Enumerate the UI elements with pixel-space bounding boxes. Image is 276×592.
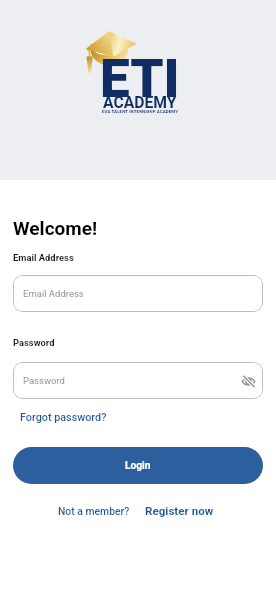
staticText: Email Address bbox=[23, 288, 84, 299]
button[interactable]: Register now bbox=[145, 504, 214, 518]
button[interactable]: Show password bbox=[237, 370, 259, 392]
staticText: ACADEMY bbox=[103, 93, 177, 111]
button[interactable]: Forgot password? bbox=[20, 411, 107, 424]
staticText: Register now bbox=[145, 504, 214, 518]
staticText: ETI bbox=[100, 48, 180, 110]
staticText: EVA TALENT INTERNSHIP ACADEMY bbox=[102, 109, 179, 114]
staticText: Password bbox=[23, 375, 65, 386]
staticText: Password bbox=[13, 337, 55, 348]
staticText: Not a member? bbox=[58, 505, 130, 517]
button[interactable]: Login bbox=[13, 447, 263, 484]
staticText: Forgot password? bbox=[20, 411, 107, 424]
button[interactable]: Email Address bbox=[13, 275, 263, 312]
staticText: Login bbox=[125, 460, 151, 472]
staticText: Email Address bbox=[13, 252, 74, 263]
button[interactable]: Password bbox=[13, 362, 263, 399]
staticText: Welcome! bbox=[13, 217, 98, 239]
